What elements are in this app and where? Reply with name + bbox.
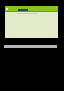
- button[interactable]: Menu: [5, 6, 58, 11]
